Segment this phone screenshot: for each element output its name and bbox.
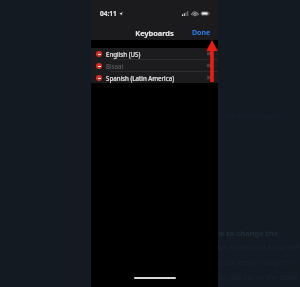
staticText: Spanish (Latin America): [106, 74, 207, 82]
button[interactable]: Delete Spanish (Latin America): [96, 75, 102, 81]
other: Reorder Spanish (Latin America): [207, 75, 213, 80]
button[interactable]: Delete Bisaal: [91, 60, 218, 71]
button[interactable]: Delete English (US): [96, 51, 102, 57]
button[interactable]: Delete English (US): [91, 48, 218, 59]
staticText: Done: [192, 28, 211, 38]
other: Reorder English (US): [207, 51, 213, 56]
button[interactable]: Delete Spanish (Latin America): [91, 72, 218, 83]
staticText: Keyboards: [135, 28, 174, 38]
staticText: w to change the keyboa: [218, 228, 300, 238]
staticText: English (US): [106, 50, 207, 58]
other: Reorder Bisaal: [207, 63, 213, 68]
button[interactable]: Done: [185, 26, 218, 40]
staticText: Bisaal: [106, 62, 207, 70]
button[interactable]: Delete Bisaal: [96, 63, 102, 69]
staticText: 04:11: [100, 9, 117, 18]
